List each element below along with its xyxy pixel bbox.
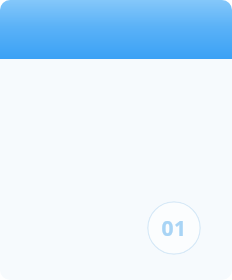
button[interactable] bbox=[0, 0, 232, 59]
button[interactable]: Step 01 bbox=[147, 201, 201, 255]
staticText: 01 bbox=[161, 214, 187, 243]
